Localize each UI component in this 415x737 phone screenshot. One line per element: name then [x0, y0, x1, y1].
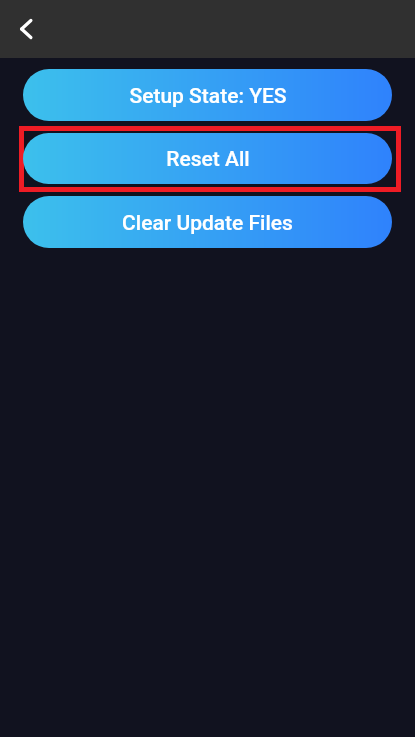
- button[interactable]: Back: [0, 0, 52, 58]
- button[interactable]: Setup State: YES: [23, 69, 392, 121]
- staticText: Reset All: [166, 147, 250, 172]
- button[interactable]: Clear Update Files: [23, 196, 392, 248]
- button[interactable]: Reset All: [23, 133, 392, 184]
- staticText: Clear Update Files: [122, 211, 293, 236]
- staticText: Setup State: YES: [129, 84, 287, 109]
